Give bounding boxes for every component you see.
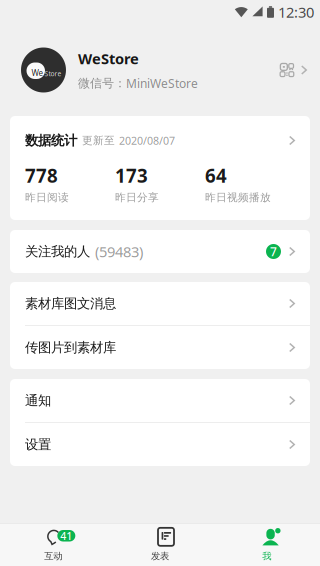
staticText: 通知 [25,392,51,409]
staticText: 41 [60,529,72,543]
button[interactable]: 传图片到素材库 [10,326,310,369]
staticText: 设置 [25,436,51,453]
staticText: 173 [115,163,148,188]
staticText: (59483) [95,242,143,261]
staticText: Store [45,69,62,78]
staticText: 昨日分享 [115,191,159,204]
button[interactable]: 数据统计 [10,116,310,165]
staticText: We [32,67,44,78]
staticText: 64 [205,163,227,188]
button[interactable]: 设置 [10,423,310,466]
staticText: 昨日阅读 [25,191,69,204]
button[interactable]: 我 [213,523,320,566]
staticText: 12:30 [278,2,314,22]
staticText: WeStore [78,49,139,68]
staticText: 发表 [151,550,169,562]
staticText: 传图片到素材库 [25,339,116,356]
staticText: 昨日视频播放 [205,191,271,204]
button[interactable]: We [0,24,320,116]
button[interactable]: 41 [0,523,107,566]
staticText: 7 [270,243,277,259]
staticText: 关注我的人 [25,243,90,260]
staticText: 778 [25,163,58,188]
button[interactable]: 关注我的人 [10,230,310,273]
staticText: MiniWeStore [126,75,198,91]
staticText: 2020/08/07 [119,133,175,148]
staticText: 数据统计 [25,132,77,149]
button[interactable]: 发表 [107,523,213,566]
staticText: 互动 [44,550,62,562]
staticText: 素材库图文消息 [25,295,116,312]
staticText: 我 [262,550,271,562]
button[interactable]: 素材库图文消息 [10,282,310,325]
staticText: 微信号： [78,76,126,91]
staticText: 更新至 [82,134,115,147]
button[interactable]: 通知 [10,379,310,422]
